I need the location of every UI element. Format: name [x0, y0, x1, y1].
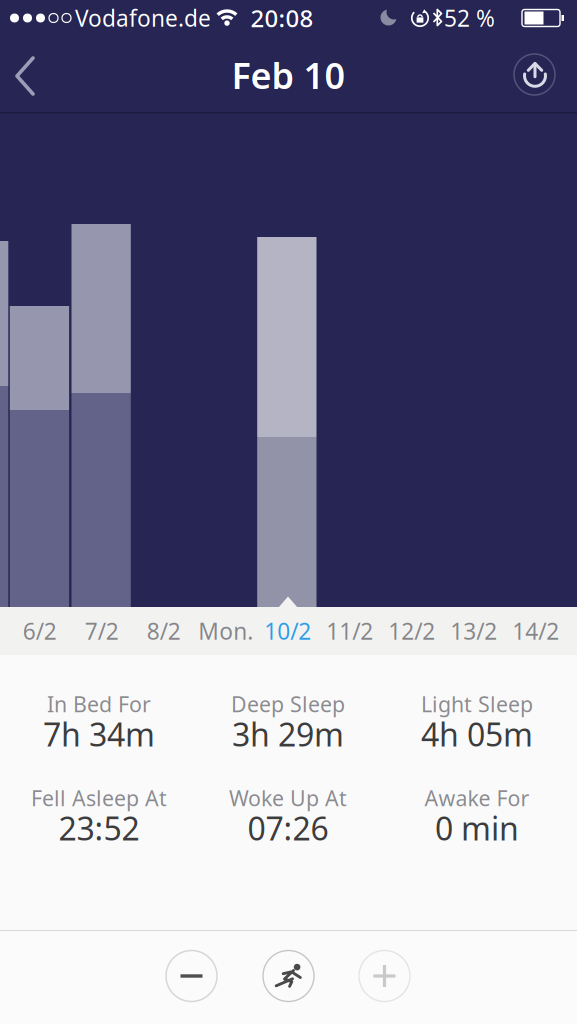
button[interactable]: Mon. — [195, 607, 257, 655]
staticText: 6/2 — [23, 616, 57, 646]
staticText: 12/2 — [388, 616, 435, 646]
button[interactable]: Share — [511, 51, 557, 97]
button[interactable]: 11/2 — [319, 607, 381, 655]
button[interactable]: 12/2 — [381, 607, 443, 655]
staticText: 8/2 — [147, 616, 181, 646]
button[interactable]: 8/2 — [133, 607, 195, 655]
button[interactable]: 7/2 — [71, 607, 133, 655]
staticText: 4h 05m — [421, 713, 533, 755]
staticText: 20:08 — [250, 2, 313, 34]
staticText: Light Sleep — [421, 690, 533, 718]
button[interactable]: 13/2 — [443, 607, 505, 655]
staticText: 07:26 — [247, 807, 328, 849]
staticText: 7/2 — [85, 616, 119, 646]
staticText: 0 min — [435, 807, 519, 849]
staticText: 10/2 — [264, 616, 311, 646]
button[interactable]: Back — [9, 53, 53, 99]
button[interactable]: Activity — [262, 949, 315, 1002]
staticText: 11/2 — [326, 616, 373, 646]
staticText: Deep Sleep — [231, 690, 345, 718]
staticText: Woke Up At — [229, 784, 347, 812]
staticText: 13/2 — [450, 616, 497, 646]
staticText: 3h 29m — [232, 713, 344, 755]
staticText: Mon. — [198, 616, 253, 646]
button[interactable]: 6/2 — [9, 607, 71, 655]
button[interactable]: Remove — [165, 949, 218, 1002]
staticText: Feb 10 — [231, 51, 345, 99]
staticText: Fell Asleep At — [31, 784, 167, 812]
staticText: Awake For — [424, 784, 529, 812]
staticText: 14/2 — [512, 616, 559, 646]
staticText: Vodafone.de — [75, 3, 211, 33]
button[interactable]: 14/2 — [505, 607, 567, 655]
staticText: 7h 34m — [43, 713, 155, 755]
button[interactable]: Add — [358, 949, 411, 1002]
button[interactable]: 10/2 — [257, 607, 319, 655]
staticText: In Bed For — [47, 690, 151, 718]
staticText: 52 % — [444, 3, 495, 33]
staticText: 23:52 — [58, 807, 139, 849]
